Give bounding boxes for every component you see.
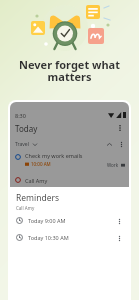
staticText: Travel: [15, 141, 29, 148]
staticText: 8:30: [15, 112, 26, 119]
staticText: Never forget what matters: [0, 57, 139, 84]
button[interactable]: Call Amy: [10, 174, 129, 186]
staticText: Check my work emails: [25, 152, 83, 159]
button[interactable]: Today: [10, 121, 129, 135]
button[interactable]: More options: [113, 215, 125, 227]
staticText: 10:00 AM: [31, 161, 51, 167]
button[interactable]: More options: [113, 232, 125, 244]
staticText: Today: [15, 123, 38, 134]
button[interactable]: Today 10:30 AM: [10, 229, 129, 246]
button[interactable]: Travel: [10, 138, 129, 150]
button[interactable]: Group options: [116, 139, 126, 149]
staticText: Call Amy: [25, 177, 48, 184]
staticText: Today 10:30 AM: [28, 234, 69, 241]
button[interactable]: Today 9:00 AM: [10, 212, 129, 229]
staticText: Work: [107, 162, 119, 168]
button[interactable]: More options: [114, 122, 126, 134]
button[interactable]: Collapse group: [104, 139, 114, 149]
staticText: Call Amy: [16, 205, 35, 211]
staticText: Reminders: [16, 192, 60, 204]
button[interactable]: Check my work emails: [10, 152, 129, 170]
staticText: Today 9:00 AM: [28, 217, 66, 224]
